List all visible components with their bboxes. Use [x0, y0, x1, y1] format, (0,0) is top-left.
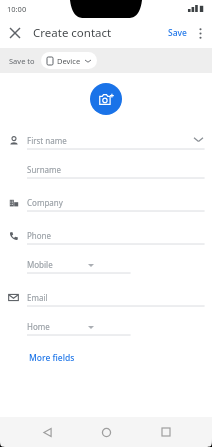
staticText: Mobile — [27, 259, 53, 270]
button[interactable]: Email — [0, 286, 212, 315]
staticText: Create contact — [33, 25, 112, 41]
button[interactable]: Save — [165, 25, 190, 41]
button[interactable]: Home — [0, 315, 212, 344]
button[interactable]: Device — [41, 52, 97, 69]
staticText: Email — [27, 292, 48, 303]
button[interactable]: Surname — [0, 158, 212, 187]
button[interactable]: Recent apps — [153, 419, 179, 445]
button[interactable]: Back — [34, 419, 60, 445]
staticText: Home — [27, 321, 50, 332]
button[interactable]: More options — [190, 23, 210, 43]
button[interactable]: First name — [0, 129, 212, 158]
staticText: Save — [168, 27, 187, 39]
button[interactable]: Close — [4, 22, 26, 44]
staticText: More fields — [29, 352, 75, 364]
button[interactable]: Home — [93, 419, 119, 445]
button[interactable]: Phone — [0, 224, 212, 253]
staticText: Company — [27, 197, 63, 208]
staticText: First name — [27, 135, 67, 146]
staticText: Surname — [27, 164, 62, 175]
button[interactable]: Add photo — [90, 83, 122, 115]
button[interactable]: More fields — [27, 350, 77, 366]
staticText: 10:00 — [7, 4, 27, 14]
staticText: Save to — [9, 56, 35, 66]
button[interactable]: Company — [0, 191, 212, 220]
staticText: Device — [57, 56, 81, 66]
button[interactable]: Mobile — [0, 253, 212, 282]
staticText: Phone — [27, 230, 52, 241]
